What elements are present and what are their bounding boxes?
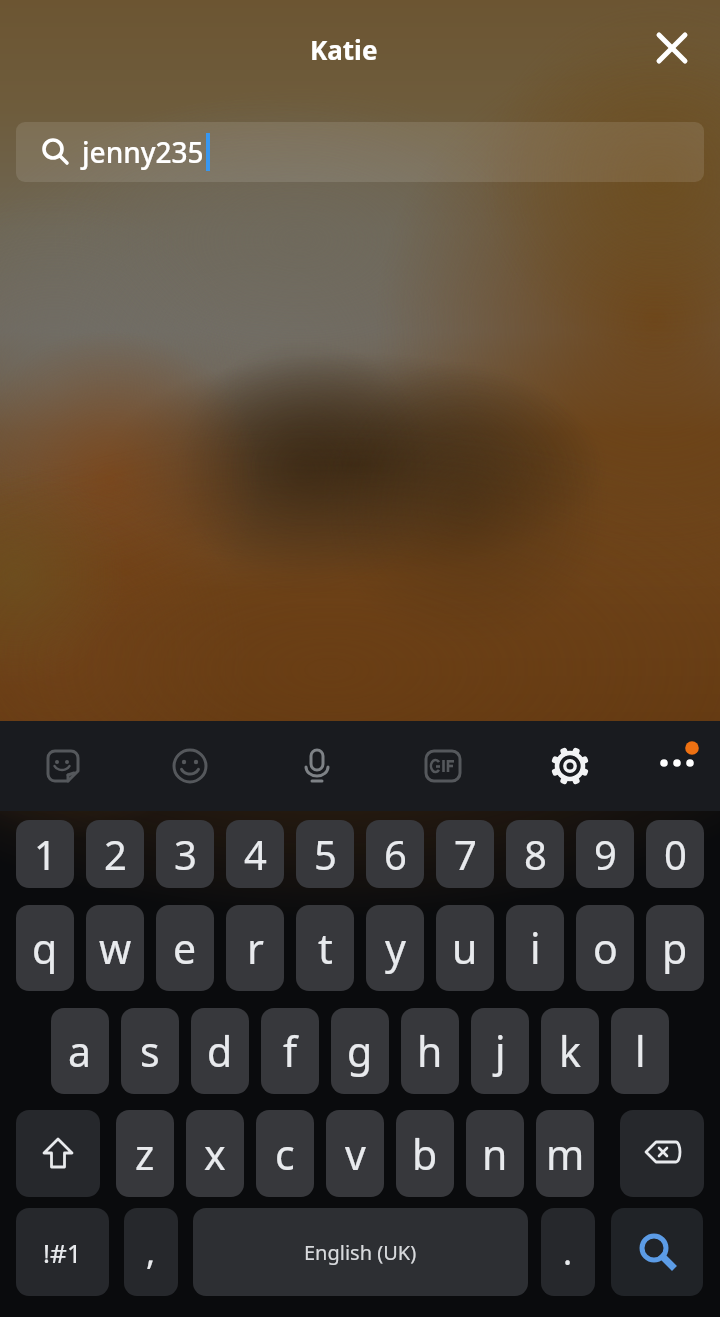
staticText: j — [495, 1023, 506, 1079]
button[interactable]: 6 — [366, 820, 424, 888]
button[interactable] — [611, 1208, 703, 1296]
button[interactable]: a — [51, 1008, 109, 1094]
button[interactable]: English (UK) — [193, 1208, 528, 1296]
button[interactable]: t — [296, 905, 354, 991]
button[interactable]: q — [16, 905, 74, 991]
staticText: 5 — [314, 827, 337, 881]
staticText: jenny235 — [82, 133, 204, 171]
button[interactable]: 1 — [16, 820, 74, 888]
staticText: n — [482, 1126, 508, 1182]
staticText: 2 — [104, 827, 127, 881]
staticText: English (UK) — [304, 1239, 417, 1266]
button[interactable]: w — [86, 905, 144, 991]
button[interactable] — [162, 738, 218, 794]
button[interactable]: l — [611, 1008, 669, 1094]
button[interactable]: i — [506, 905, 564, 991]
button[interactable]: z — [116, 1110, 174, 1197]
button[interactable]: 4 — [226, 820, 284, 888]
button[interactable] — [620, 1110, 704, 1197]
staticText: a — [68, 1023, 92, 1079]
button[interactable]: n — [466, 1110, 524, 1197]
staticText: r — [247, 920, 264, 976]
button[interactable] — [16, 1110, 100, 1197]
staticText: q — [32, 920, 58, 976]
button[interactable]: , — [124, 1208, 178, 1296]
button[interactable]: o — [576, 905, 634, 991]
staticText: l — [635, 1023, 646, 1079]
button[interactable]: d — [191, 1008, 249, 1094]
button[interactable]: u — [436, 905, 494, 991]
button[interactable]: r — [226, 905, 284, 991]
staticText: e — [173, 920, 197, 976]
button[interactable]: j — [471, 1008, 529, 1094]
button[interactable]: 2 — [86, 820, 144, 888]
staticText: c — [275, 1126, 295, 1182]
button[interactable]: c — [256, 1110, 314, 1197]
staticText: 6 — [384, 827, 407, 881]
button[interactable]: x — [186, 1110, 244, 1197]
staticText: b — [412, 1126, 438, 1182]
button[interactable]: v — [326, 1110, 384, 1197]
button[interactable]: f — [261, 1008, 319, 1094]
button[interactable]: 5 — [296, 820, 354, 888]
button[interactable]: 3 — [156, 820, 214, 888]
staticText: d — [207, 1023, 233, 1079]
staticText: o — [593, 920, 618, 976]
staticText: m — [546, 1126, 585, 1182]
staticText: y — [385, 920, 406, 976]
button[interactable] — [35, 738, 91, 794]
staticText: u — [452, 920, 478, 976]
staticText: 8 — [524, 827, 547, 881]
button[interactable] — [542, 738, 598, 794]
button[interactable]: 9 — [576, 820, 634, 888]
button[interactable]: 7 — [436, 820, 494, 888]
staticText: s — [140, 1023, 160, 1079]
button[interactable]: h — [401, 1008, 459, 1094]
staticText: w — [99, 920, 132, 976]
button[interactable]: p — [646, 905, 704, 991]
staticText: z — [135, 1126, 155, 1182]
staticText: 9 — [594, 827, 617, 881]
staticText: Katie — [310, 32, 378, 67]
staticText: i — [530, 920, 541, 976]
button[interactable]: !#1 — [16, 1208, 109, 1296]
button[interactable]: s — [121, 1008, 179, 1094]
button[interactable]: e — [156, 905, 214, 991]
button[interactable] — [415, 738, 471, 794]
button[interactable]: jenny235 — [16, 122, 704, 182]
button[interactable] — [289, 738, 345, 794]
button[interactable]: y — [366, 905, 424, 991]
staticText: p — [662, 920, 688, 976]
button[interactable] — [649, 738, 705, 794]
staticText: 0 — [664, 827, 687, 881]
staticText: g — [347, 1023, 373, 1079]
staticText: . — [563, 1229, 573, 1275]
button[interactable]: 0 — [646, 820, 704, 888]
staticText: !#1 — [43, 1235, 82, 1270]
staticText: 3 — [174, 827, 197, 881]
button[interactable]: k — [541, 1008, 599, 1094]
staticText: t — [318, 920, 333, 976]
button[interactable]: m — [536, 1110, 594, 1197]
staticText: k — [559, 1023, 581, 1079]
button[interactable] — [644, 20, 700, 76]
staticText: 7 — [454, 827, 477, 881]
button[interactable]: b — [396, 1110, 454, 1197]
button[interactable]: g — [331, 1008, 389, 1094]
staticText: x — [204, 1126, 226, 1182]
staticText: h — [417, 1023, 443, 1079]
button[interactable]: . — [541, 1208, 595, 1296]
staticText: , — [146, 1229, 156, 1275]
staticText: f — [283, 1023, 298, 1079]
staticText: 4 — [244, 827, 267, 881]
staticText: 1 — [34, 827, 57, 881]
button[interactable]: 8 — [506, 820, 564, 888]
staticText: v — [345, 1126, 366, 1182]
